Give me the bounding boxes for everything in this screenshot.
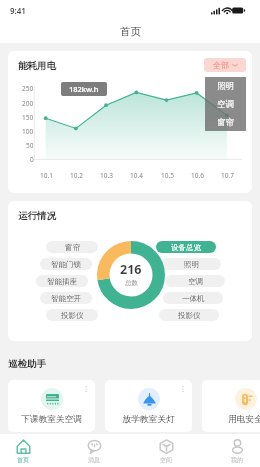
staticText: 50 [26, 141, 34, 150]
button[interactable]: 智能插座 [36, 275, 88, 287]
button[interactable]: 照明 [161, 258, 221, 270]
staticText: 一体机 [182, 294, 205, 303]
staticText: 空调 [217, 99, 234, 110]
staticText: 空调 [188, 277, 203, 286]
staticText: 窗帘 [217, 117, 234, 128]
button[interactable]: 设备总览 [156, 241, 216, 253]
button[interactable]: 照明 [205, 77, 246, 95]
button[interactable]: 下课教室关空调 [8, 380, 95, 432]
other: More options [83, 386, 89, 392]
staticText: 10.2 [70, 171, 83, 180]
button[interactable]: 投影仪 [46, 309, 98, 321]
button[interactable]: 空调 [205, 95, 246, 113]
staticText: 设备总览 [171, 243, 201, 252]
button[interactable]: 我的 [214, 434, 260, 467]
staticText: 智能门锁 [51, 260, 81, 269]
button[interactable]: 窗帘 [46, 241, 98, 253]
button[interactable]: 全部 [204, 58, 246, 72]
button[interactable]: 消息 [71, 434, 117, 467]
staticText: 200 [22, 99, 34, 108]
button[interactable]: 首页 [0, 434, 46, 467]
staticText: 150 [22, 113, 34, 122]
staticText: 10.7 [221, 171, 234, 180]
staticText: 智能插座 [47, 277, 77, 286]
button[interactable]: 放学教室关灯 [105, 380, 192, 432]
staticText: 首页 [17, 456, 29, 464]
staticText: 10.4 [130, 171, 143, 180]
button[interactable]: 智能空开 [40, 292, 92, 304]
button[interactable]: 窗帘 [205, 113, 246, 131]
button[interactable]: 一体机 [163, 292, 223, 304]
staticText: 10.3 [100, 171, 113, 180]
staticText: 10.1 [40, 171, 53, 180]
staticText: 运行情况 [18, 210, 56, 222]
button[interactable]: 投影仪 [159, 309, 219, 321]
staticText: 9:41 [10, 5, 26, 16]
staticText: 能耗用电 [18, 60, 56, 72]
staticText: 投影仪 [178, 311, 201, 320]
button[interactable]: 空间 [143, 434, 189, 467]
staticText: 总数 [125, 279, 138, 287]
staticText: 全部 [213, 60, 229, 70]
staticText: 182kw.h [69, 84, 99, 94]
staticText: 投影仪 [61, 311, 84, 320]
other: More options [180, 386, 186, 392]
staticText: 照明 [184, 260, 199, 269]
staticText: 216 [120, 261, 142, 278]
staticText: 用电安全 [228, 414, 260, 425]
staticText: 下课教室关空调 [21, 414, 82, 425]
staticText: 巡检助手 [8, 358, 46, 370]
staticText: 10.6 [191, 171, 204, 180]
staticText: 消息 [88, 456, 100, 464]
staticText: 250 [22, 84, 34, 93]
staticText: 10.5 [161, 171, 174, 180]
staticText: 我的 [231, 456, 243, 464]
staticText: 空间 [160, 456, 172, 464]
staticText: 窗帘 [65, 243, 80, 252]
staticText: 放学教室关灯 [122, 414, 175, 425]
staticText: 0 [30, 155, 34, 164]
staticText: 100 [22, 127, 34, 136]
staticText: 智能空开 [51, 294, 81, 303]
staticText: 首页 [120, 25, 141, 38]
button[interactable]: 智能门锁 [40, 258, 92, 270]
button[interactable]: 用电安全 [202, 380, 260, 432]
button[interactable]: 空调 [165, 275, 225, 287]
staticText: 照明 [217, 81, 234, 92]
